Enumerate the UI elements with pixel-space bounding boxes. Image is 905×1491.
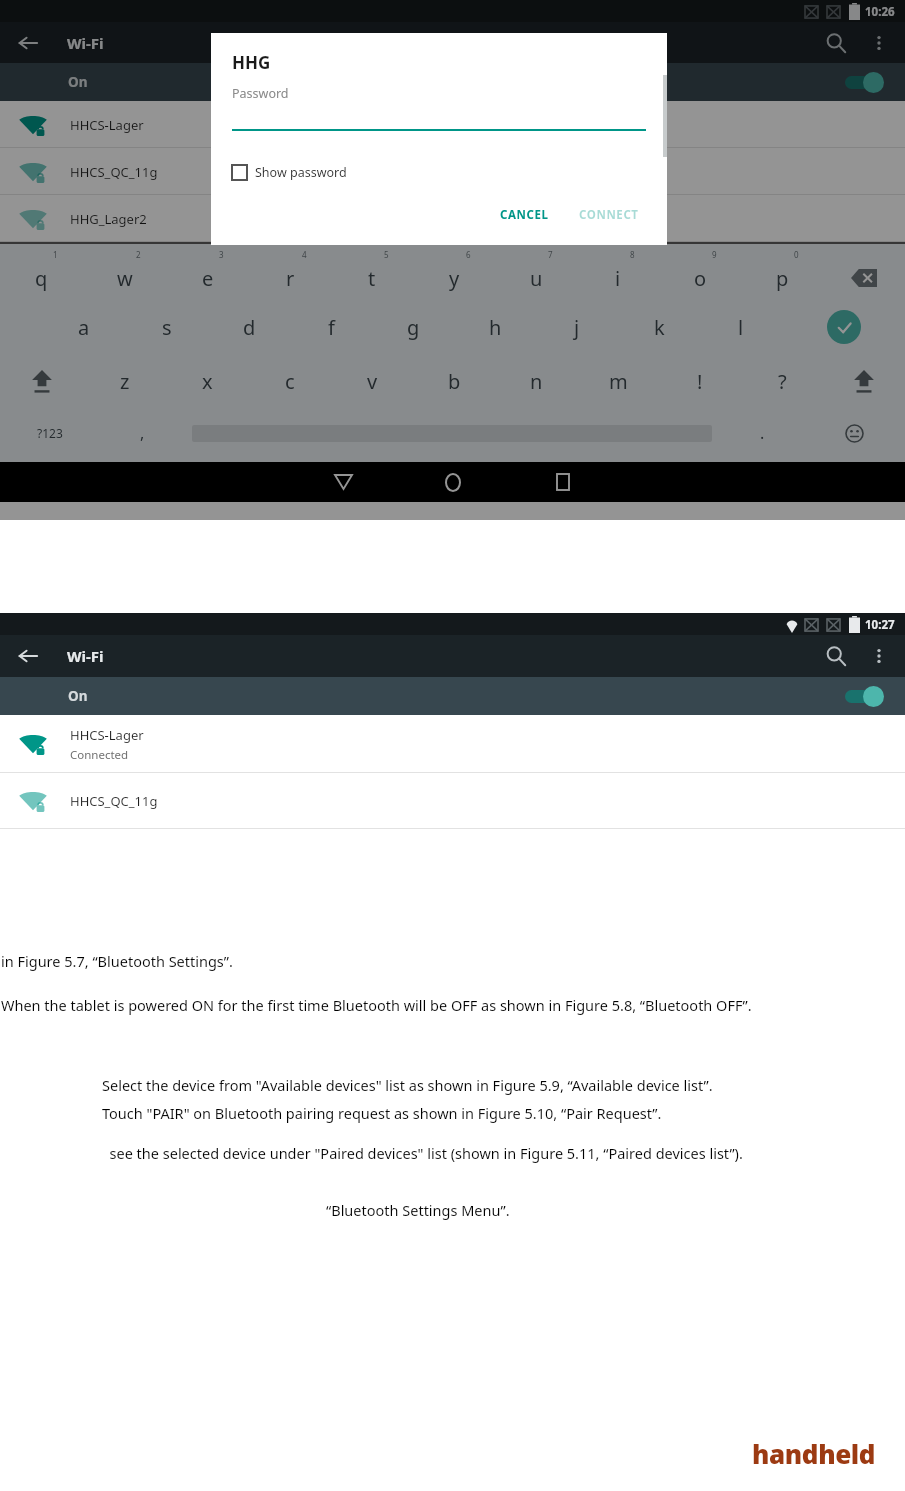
staticText: HHCS_QC_11g [70, 792, 158, 810]
button[interactable] [841, 685, 887, 707]
button[interactable]: 3 [166, 246, 249, 300]
staticText: a [78, 314, 90, 341]
button[interactable]: m [577, 354, 659, 408]
staticText: ! [697, 368, 703, 395]
button[interactable]: Shift [823, 354, 905, 408]
button[interactable]: 0 [741, 246, 823, 300]
button[interactable]: Shift [0, 354, 83, 408]
staticText: Show password [255, 164, 347, 181]
button[interactable]: s [125, 300, 208, 354]
button[interactable]: h [454, 300, 536, 354]
staticText: Touch "PAIR" on Bluetooth pairing reques… [102, 1103, 662, 1123]
staticText: o [694, 265, 707, 292]
button[interactable]: Home [423, 462, 483, 502]
button[interactable] [841, 71, 887, 93]
staticText: HHCS-Lager [70, 116, 144, 134]
button[interactable]: HHCS_QC_11g [0, 773, 905, 829]
button[interactable]: Back [16, 31, 40, 55]
staticText: HHG_Lager2 [70, 210, 147, 228]
staticText: m [609, 368, 628, 395]
staticText: ?123 [37, 425, 63, 441]
staticText: g [407, 314, 420, 341]
button[interactable]: x [166, 354, 249, 408]
staticText: 7 [548, 249, 553, 260]
staticText: q [35, 265, 48, 292]
button[interactable]: HHG_Lager2 [0, 195, 905, 242]
button[interactable]: HHCS-Lager [0, 715, 905, 773]
staticText: s [162, 314, 172, 341]
button[interactable]: Search [825, 645, 847, 667]
button[interactable]: CANCEL [492, 201, 557, 229]
staticText: w [117, 265, 133, 292]
button[interactable]: Space [184, 408, 720, 458]
staticText: ? [778, 368, 787, 395]
button[interactable]: Back [313, 462, 373, 502]
button[interactable]: More options [869, 646, 889, 666]
staticText: 0 [794, 249, 799, 260]
staticText: e [202, 265, 214, 292]
button[interactable]: , [100, 408, 184, 458]
button[interactable]: n [495, 354, 577, 408]
staticText: f [328, 314, 335, 341]
button[interactable]: Back [16, 644, 40, 668]
button[interactable]: Enter [782, 300, 905, 354]
button[interactable]: v [331, 354, 413, 408]
button[interactable]: 4 [249, 246, 331, 300]
button[interactable]: 2 [83, 246, 166, 300]
staticText: n [530, 368, 543, 395]
button[interactable]: 1 [0, 246, 83, 300]
staticText: l [738, 314, 744, 341]
staticText: in Figure 5.7, “Bluetooth Settings”. [1, 951, 233, 971]
staticText: x [202, 368, 213, 395]
other: Search [825, 32, 847, 54]
staticText: 8 [630, 249, 635, 260]
button[interactable]: b [413, 354, 495, 408]
staticText: Wi-Fi [67, 646, 104, 666]
staticText: Password [232, 85, 289, 102]
button[interactable]: a [42, 300, 125, 354]
staticText: handheld [752, 1436, 876, 1471]
button[interactable]: d [208, 300, 290, 354]
button[interactable]: c [249, 354, 331, 408]
staticText: t [368, 265, 376, 292]
button[interactable]: Show password [232, 164, 347, 181]
staticText: k [654, 314, 665, 341]
button[interactable]: ! [659, 354, 741, 408]
staticText: HHG [232, 51, 271, 74]
button[interactable]: z [83, 354, 166, 408]
staticText: y [449, 265, 460, 292]
button[interactable]: g [372, 300, 454, 354]
button[interactable]: CONNECT [571, 201, 647, 229]
button[interactable]: Emoji [804, 408, 905, 458]
button[interactable]: ?123 [0, 408, 100, 458]
button[interactable]: More options [869, 33, 889, 53]
button[interactable]: f [290, 300, 372, 354]
button[interactable]: 9 [659, 246, 741, 300]
staticText: 10:26 [865, 4, 895, 20]
staticText: d [243, 314, 256, 341]
staticText: CANCEL [500, 207, 549, 223]
button[interactable]: Recents [533, 462, 593, 502]
button[interactable]: HHCS-Lager [0, 101, 905, 148]
button[interactable]: HHCS_QC_11g [0, 148, 905, 195]
button[interactable]: k [618, 300, 700, 354]
staticText: 10:27 [865, 617, 895, 633]
button[interactable]: 5 [331, 246, 413, 300]
staticText: 5 [384, 249, 389, 260]
button[interactable]: 7 [495, 246, 577, 300]
button[interactable]: Backspace [823, 246, 905, 300]
staticText: Select the device from "Available device… [102, 1075, 713, 1095]
staticText: . [760, 422, 765, 444]
other: Back [16, 644, 40, 668]
staticText: h [489, 314, 502, 341]
staticText: HHCS-Lager [70, 726, 144, 744]
button[interactable]: j [536, 300, 618, 354]
button[interactable]: l [700, 300, 782, 354]
button[interactable]: 6 [413, 246, 495, 300]
button[interactable]: ? [741, 354, 823, 408]
button[interactable]: Search [825, 32, 847, 54]
button[interactable]: 8 [577, 246, 659, 300]
staticText: see the selected device under "Paired de… [102, 1143, 743, 1163]
staticText: Connected [70, 747, 129, 763]
